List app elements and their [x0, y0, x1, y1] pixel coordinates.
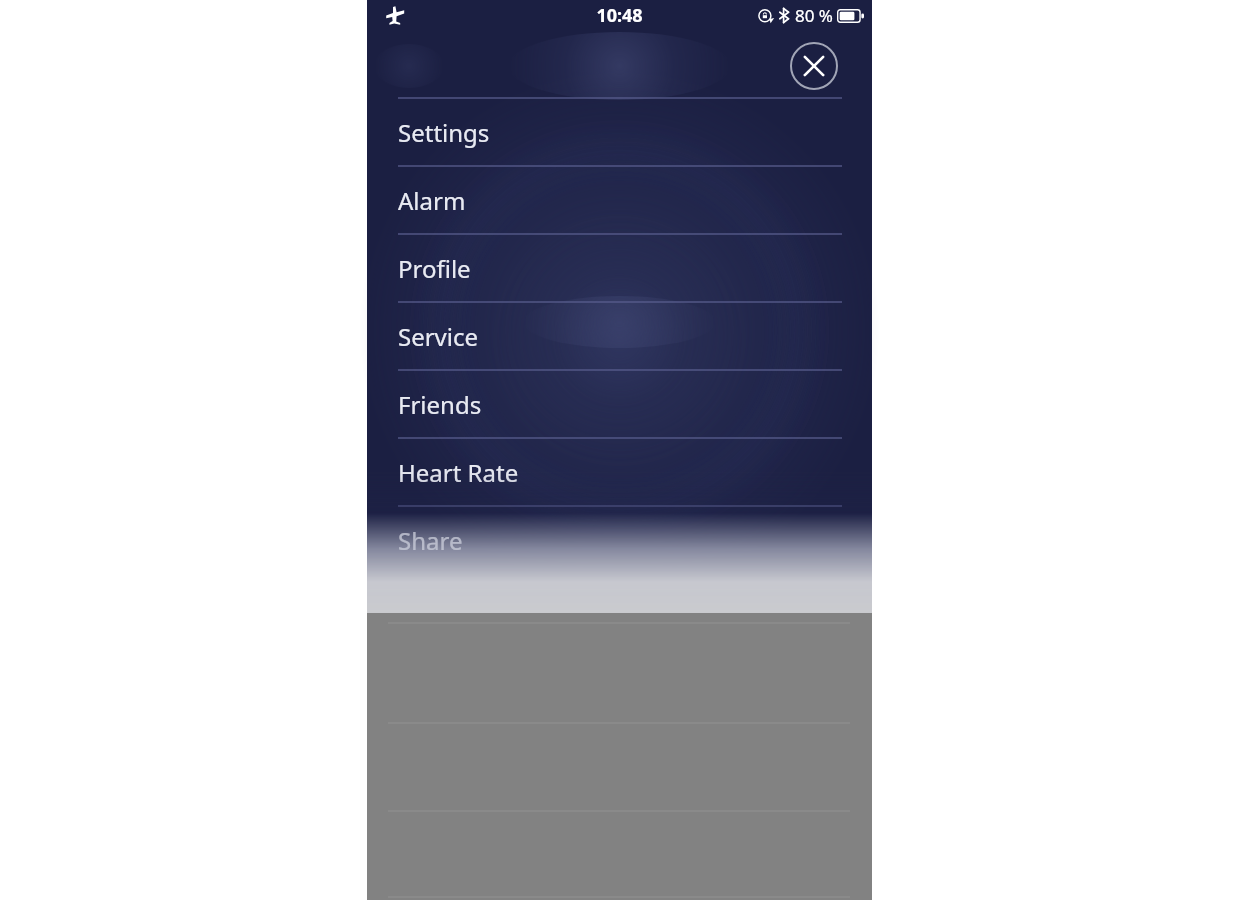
button[interactable]: Service	[398, 302, 842, 370]
staticText: 80 %	[795, 4, 833, 27]
staticText: Share	[398, 524, 463, 557]
staticText: Service	[398, 320, 479, 353]
button[interactable]: Friends	[398, 370, 842, 438]
button[interactable]: Heart Rate	[398, 438, 842, 506]
staticText: Profile	[398, 252, 471, 285]
button[interactable]: Settings	[398, 98, 842, 166]
staticText: Alarm	[398, 184, 466, 217]
other: Airplane mode	[381, 0, 409, 30]
button[interactable]: Alarm	[398, 166, 842, 234]
staticText: Settings	[398, 116, 490, 149]
staticText: 10:48	[596, 3, 643, 28]
button[interactable]: Share	[398, 506, 842, 574]
button[interactable]: Close	[789, 41, 839, 91]
button[interactable]: Profile	[398, 234, 842, 302]
staticText: Friends	[398, 388, 482, 421]
staticText: Heart Rate	[398, 456, 519, 489]
